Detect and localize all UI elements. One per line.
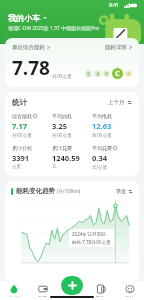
staticText: 平均电耗 [92, 113, 112, 119]
staticText: D [127, 71, 131, 77]
staticText: 0.34 [92, 153, 107, 163]
button[interactable]: Add record [61, 276, 83, 295]
staticText: 养车 [38, 296, 47, 297]
button[interactable]: 车友 [86, 281, 115, 300]
staticText: 我的 [125, 296, 134, 297]
button[interactable]: C [112, 68, 123, 79]
button[interactable]: 我的小车 [8, 13, 47, 23]
button[interactable]: B [103, 70, 110, 77]
staticText: 度/百公里 [92, 132, 112, 138]
staticText: 12.63 [92, 121, 112, 131]
staticText: 升/百公里 [12, 132, 32, 138]
staticText: 平均花费 [92, 145, 112, 151]
button[interactable]: A [94, 70, 101, 77]
button[interactable]: 我的 [115, 281, 144, 300]
button[interactable]: D [125, 70, 132, 77]
staticText: 3.25 [52, 121, 67, 131]
staticText: 升/百公里 [52, 73, 72, 79]
staticText: 9:41 [109, 2, 119, 9]
staticText: 3391 [12, 153, 30, 163]
button[interactable]: 最近综合能耗 [5, 38, 139, 87]
staticText: 最近综合能耗 [12, 44, 45, 51]
staticText: 上个月 [108, 99, 125, 106]
staticText: 车友 [96, 296, 105, 297]
staticText: 7.17 [12, 121, 27, 131]
staticText: 平均油耗 [52, 113, 72, 119]
staticText: 综合能耗 [12, 113, 32, 119]
staticText: 能耗详情 [105, 44, 127, 51]
staticText: S [87, 71, 90, 77]
staticText: 元/公里 [92, 164, 108, 170]
staticText: 季度 [116, 188, 126, 194]
staticText: 累计行程 [12, 145, 32, 151]
staticText: 我的小车 [8, 13, 40, 23]
staticText: 公里 [12, 164, 21, 170]
button[interactable]: 养车 [28, 281, 57, 300]
staticText: 福瑞C-DM 2025款 1.5T 中级版长续航Pro [8, 25, 100, 32]
staticText: 升/百公里 [52, 132, 72, 138]
staticText: 能耗:7.78升/百公里 [72, 239, 111, 245]
button[interactable]: 能耗详情 [105, 44, 132, 51]
staticText: 7.78 [12, 55, 50, 81]
button[interactable]: 油耗 [0, 281, 28, 300]
staticText: 统计 [12, 98, 27, 107]
staticText: B [105, 71, 108, 77]
button[interactable]: 上个月 [108, 99, 132, 106]
button[interactable]: 季度 [116, 188, 133, 194]
button[interactable]: S [85, 70, 92, 77]
staticText: (升/100km) [57, 188, 81, 194]
staticText: 2024年12月30日 [72, 231, 107, 237]
staticText: 能耗变化趋势 [16, 187, 55, 195]
staticText: C [115, 69, 120, 79]
staticText: A [96, 71, 100, 77]
staticText: 元 [52, 164, 57, 170]
staticText: 累计花费 [52, 145, 72, 151]
staticText: 1240.59 [52, 153, 80, 163]
staticText: 油耗 [10, 296, 19, 297]
